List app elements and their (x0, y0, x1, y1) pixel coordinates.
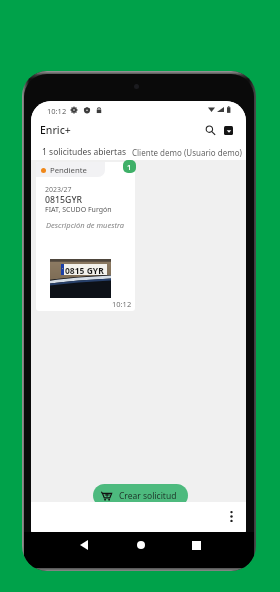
staticText: Pendiente (50, 165, 87, 176)
button[interactable]: Pendiente (36, 162, 135, 311)
staticText: FIAT, SCUDO Furgón (45, 205, 112, 215)
staticText: Descripción de muestra (46, 220, 124, 230)
staticText: 1 (127, 162, 132, 172)
button[interactable]: More options (222, 507, 241, 526)
staticText: Cliente demo (Usuario demo) (132, 147, 242, 158)
staticText: Enric+ (40, 123, 71, 137)
button[interactable]: Home (131, 535, 151, 555)
staticText: 1 solicitudes abiertas (42, 146, 126, 158)
button[interactable]: Search (201, 121, 220, 140)
staticText: 0815GYR (45, 194, 83, 206)
staticText: 10:12 (47, 106, 67, 116)
button[interactable]: Inbox (219, 121, 238, 140)
button[interactable]: Crear solicitud (93, 484, 188, 507)
staticText: 0815 GYR (65, 265, 104, 276)
button[interactable]: Recent apps (186, 535, 206, 555)
staticText: 10:12 (112, 299, 132, 309)
button[interactable]: Back (74, 535, 94, 555)
staticText: 2023/27 (45, 185, 72, 195)
staticText: Crear solicitud (119, 490, 177, 502)
